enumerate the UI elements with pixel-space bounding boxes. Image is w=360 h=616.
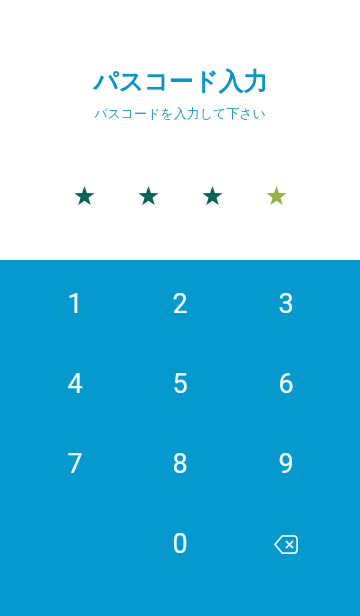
button[interactable]: 3 [233,264,339,344]
staticText: 1 [67,288,83,320]
button[interactable]: 8 [127,424,233,504]
staticText: パスコードを入力して下さい [94,105,266,121]
staticText: 2 [172,288,188,320]
staticText: パスコード入力 [93,66,268,97]
button[interactable]: 2 [127,264,233,344]
button[interactable]: 9 [233,424,339,504]
staticText: 6 [278,368,294,400]
staticText: 3 [278,288,294,320]
staticText: 9 [278,448,294,480]
staticText: 4 [67,368,83,400]
button[interactable]: 6 [233,344,339,424]
button[interactable]: 1 [22,264,127,344]
button[interactable]: 5 [127,344,233,424]
staticText: 5 [172,368,188,400]
button[interactable]: 4 [22,344,127,424]
button[interactable]: Backspace [233,504,339,584]
button[interactable]: 7 [22,424,127,504]
button[interactable]: 0 [127,504,233,584]
staticText: 7 [67,448,83,480]
staticText: 0 [172,528,188,560]
staticText: 8 [172,448,188,480]
